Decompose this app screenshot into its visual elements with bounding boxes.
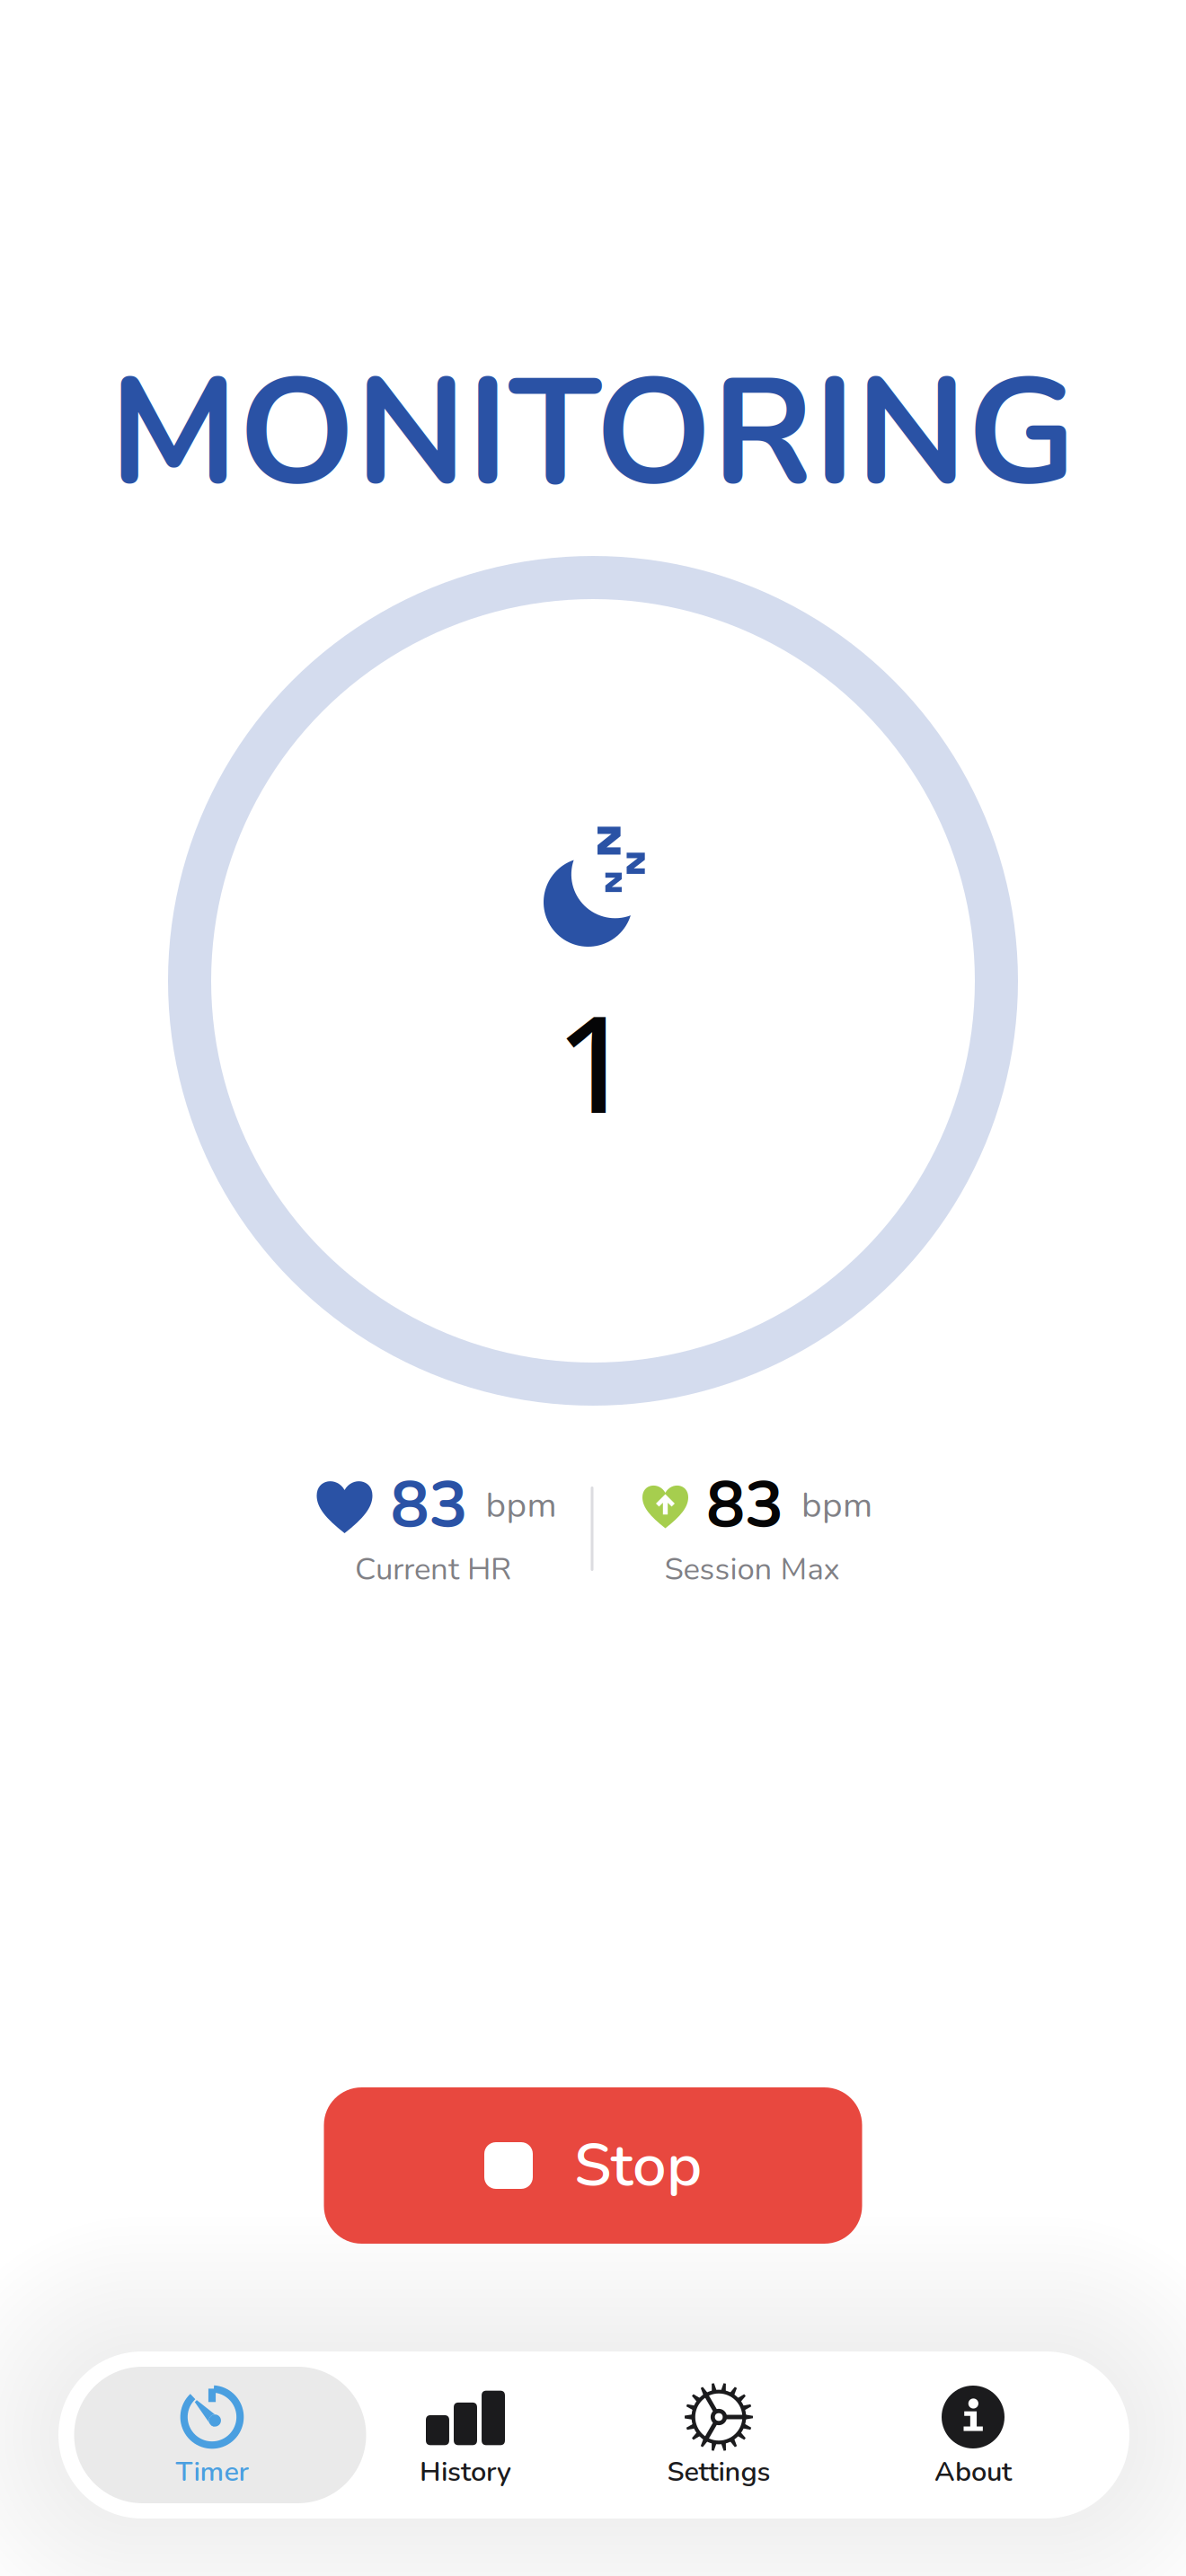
staticText: About: [934, 2453, 1012, 2491]
staticText: 83: [706, 1461, 783, 1549]
staticText: bpm: [801, 1482, 872, 1529]
staticText: Timer: [176, 2453, 248, 2491]
staticText: History: [420, 2453, 511, 2491]
button[interactable]: Timer: [86, 2351, 338, 2519]
button[interactable]: Settings: [593, 2351, 845, 2519]
button[interactable]: Stop: [324, 2087, 862, 2244]
staticText: Current HR: [355, 1548, 511, 1590]
staticText: Stop: [574, 2125, 702, 2206]
staticText: 1: [556, 972, 632, 1150]
staticText: Session Max: [664, 1548, 840, 1590]
button[interactable]: About: [847, 2351, 1099, 2519]
staticText: bpm: [486, 1482, 557, 1529]
button[interactable]: History: [340, 2351, 591, 2519]
staticText: MONITORING: [109, 333, 1077, 535]
staticText: Settings: [667, 2453, 770, 2491]
staticText: 83: [390, 1461, 468, 1549]
